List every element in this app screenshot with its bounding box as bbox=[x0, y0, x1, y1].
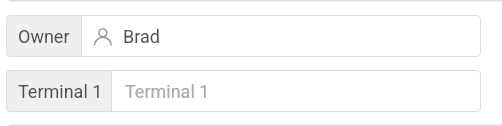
staticText: Brad bbox=[123, 26, 160, 47]
staticText: Owner bbox=[18, 26, 70, 47]
staticText: Terminal 1 bbox=[125, 81, 210, 102]
other: Owner bbox=[93, 27, 113, 46]
button[interactable]: Terminal 1 bbox=[6, 70, 481, 112]
staticText: Terminal 1 bbox=[18, 81, 103, 102]
button[interactable]: Owner bbox=[6, 15, 481, 57]
